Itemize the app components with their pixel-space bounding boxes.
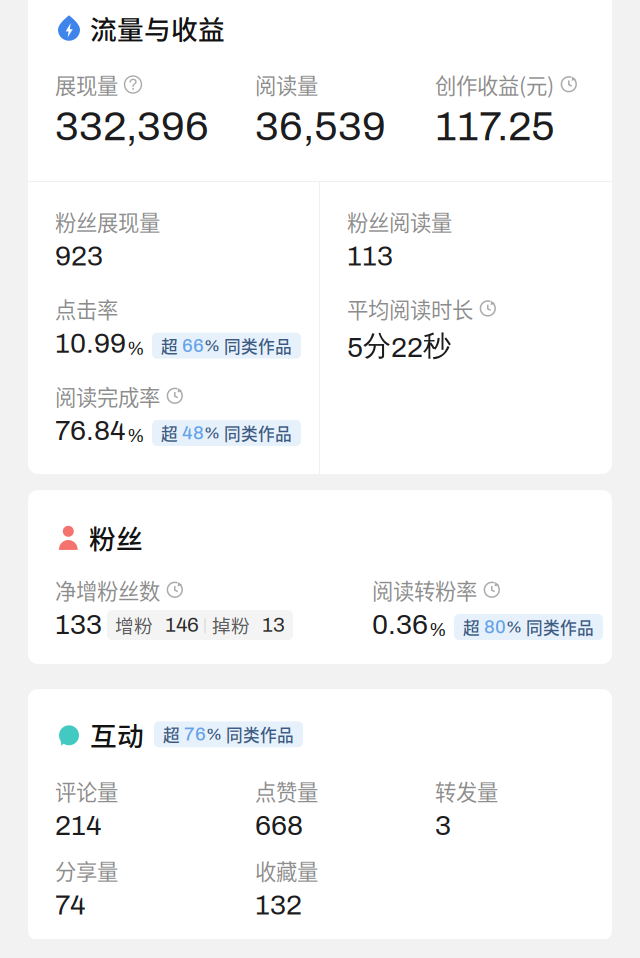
staticText: 76 [184, 724, 206, 744]
staticText: 117.25 [435, 104, 555, 149]
staticText: 74 [55, 890, 86, 920]
staticText: 5分22秒 [347, 328, 451, 363]
button[interactable]: 转发量 [435, 776, 523, 841]
staticText: 66 [182, 335, 204, 356]
staticText: 粉丝展现量 [55, 206, 160, 237]
button[interactable]: 阅读转粉率 [372, 575, 610, 640]
staticText: 48 [182, 423, 204, 443]
staticText: % [204, 424, 220, 442]
button[interactable]: 阅读完成率 [55, 381, 319, 446]
staticText: 同类作品 [224, 421, 292, 445]
button[interactable]: 粉丝 [58, 518, 143, 557]
staticText: 点赞量 [255, 776, 318, 806]
staticText: 76.84 [55, 415, 126, 446]
staticText: 展现量 [55, 69, 118, 100]
staticText: % [506, 618, 522, 636]
staticText: 掉粉 [212, 611, 250, 638]
staticText: 10.99 [55, 328, 126, 359]
staticText: 332,396 [55, 104, 209, 149]
staticText: 平均阅读时长 [347, 293, 473, 324]
button[interactable]: 阅读量 [255, 69, 435, 149]
button[interactable]: 净增粉丝数 [55, 575, 372, 640]
button[interactable]: 超 [154, 721, 303, 747]
staticText: 互动 [90, 715, 144, 754]
staticText: 923 [55, 241, 103, 271]
button[interactable]: 平均阅读时长 [347, 293, 612, 363]
button[interactable]: 分享量 [55, 855, 255, 920]
staticText: % [204, 337, 220, 355]
staticText: 同类作品 [526, 615, 594, 639]
button[interactable]: 收藏量 [255, 855, 435, 920]
staticText: 粉丝 [89, 518, 143, 557]
staticText: 粉丝阅读量 [347, 206, 452, 237]
staticText: % [206, 725, 222, 743]
staticText: 668 [255, 810, 303, 841]
staticText: 增粉 [115, 611, 153, 638]
button[interactable]: 互动 [58, 715, 144, 754]
button[interactable]: 说明 [124, 75, 142, 93]
button[interactable]: 超 [152, 333, 301, 359]
staticText: 阅读量 [255, 69, 318, 100]
staticText: 同类作品 [226, 722, 294, 746]
staticText: % [127, 426, 145, 446]
staticText: 36,539 [255, 104, 386, 149]
staticText: ? [128, 76, 137, 93]
staticText: 同类作品 [224, 334, 292, 358]
staticText: 超 [161, 421, 178, 445]
button[interactable]: 粉丝展现量 [55, 206, 319, 271]
staticText: 分享量 [55, 855, 118, 886]
staticText: 0.36 [372, 609, 428, 640]
staticText: | [203, 616, 207, 634]
button[interactable]: 创作收益(元) [435, 69, 584, 149]
button[interactable]: 评论量 [55, 776, 255, 841]
button[interactable]: 流量与收益 [58, 8, 225, 47]
button[interactable]: 超 [454, 614, 603, 640]
staticText: 转发量 [435, 776, 498, 806]
staticText: 阅读完成率 [55, 381, 160, 411]
staticText: 13 [262, 614, 285, 636]
staticText: 113 [347, 241, 393, 271]
button[interactable]: 超 [152, 420, 301, 446]
staticText: 收藏量 [255, 855, 318, 886]
staticText: 净增粉丝数 [55, 575, 160, 605]
button[interactable]: 点击率 [55, 293, 319, 359]
staticText: 146 [165, 614, 199, 636]
staticText: 超 [161, 334, 178, 358]
button[interactable]: 展现量 [55, 69, 255, 149]
staticText: 3 [435, 810, 451, 841]
button[interactable]: 粉丝阅读量 [347, 206, 612, 271]
staticText: % [127, 338, 145, 359]
staticText: 80 [484, 617, 506, 637]
staticText: 点击率 [55, 293, 118, 324]
staticText: 132 [255, 890, 302, 920]
button[interactable]: 点赞量 [255, 776, 435, 841]
staticText: 133 [55, 609, 102, 640]
staticText: 流量与收益 [90, 8, 225, 47]
staticText: 214 [55, 810, 102, 841]
staticText: 创作收益(元) [435, 69, 554, 100]
staticText: 超 [463, 615, 480, 639]
staticText: 评论量 [55, 776, 118, 806]
staticText: 超 [163, 722, 180, 746]
staticText: 阅读转粉率 [372, 575, 477, 605]
staticText: % [429, 620, 447, 640]
